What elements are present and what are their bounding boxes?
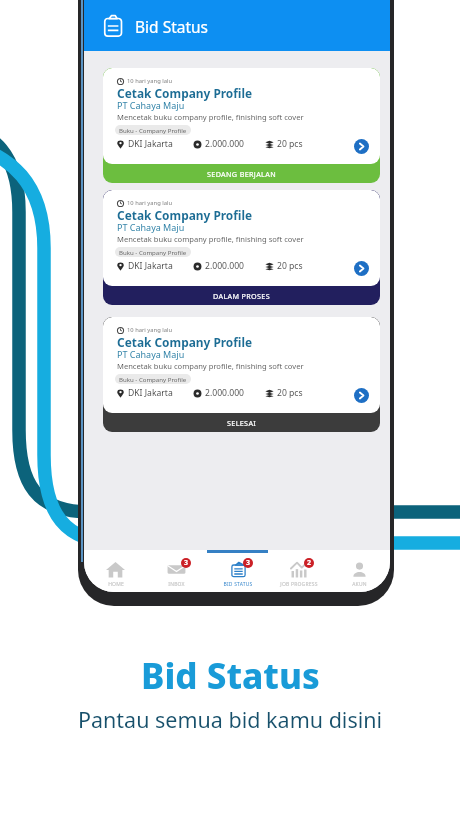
staticText: 3 [184, 558, 189, 568]
button[interactable]: SELESAI [103, 317, 380, 432]
staticText: Mencetak buku company profile, finishing… [117, 112, 304, 122]
staticText: Bid Status [135, 16, 209, 37]
staticText: JOB PROGRESS [280, 581, 318, 588]
button[interactable]: AKUN [329, 550, 390, 592]
staticText: 10 hari yang lalu [127, 199, 173, 207]
button[interactable]: 3 [207, 550, 268, 592]
staticText: 2.000.000 [205, 138, 245, 150]
button[interactable]: Open bid detail [354, 261, 369, 276]
staticText: HOME [108, 581, 124, 588]
staticText: Mencetak buku company profile, finishing… [117, 361, 304, 371]
staticText: DKI Jakarta [128, 260, 173, 272]
staticText: Mencetak buku company profile, finishing… [117, 234, 304, 244]
button[interactable]: 2 [268, 550, 329, 592]
staticText: PT Cahaya Maju [117, 221, 185, 233]
staticText: 10 hari yang lalu [127, 326, 173, 334]
staticText: DKI Jakarta [128, 138, 173, 150]
staticText: SEDANG BERJALAN [207, 169, 276, 179]
staticText: PT Cahaya Maju [117, 348, 185, 360]
staticText: Cetak Company Profile [117, 207, 253, 223]
staticText: Cetak Company Profile [117, 334, 253, 350]
staticText: 20 pcs [277, 138, 303, 150]
staticText: BID STATUS [223, 581, 253, 588]
staticText: 10 hari yang lalu [127, 77, 173, 85]
staticText: AKUN [352, 581, 367, 588]
staticText: 2.000.000 [205, 387, 245, 399]
staticText: SELESAI [227, 418, 257, 428]
button[interactable]: Open bid detail [354, 139, 369, 154]
button[interactable]: SEDANG BERJALAN [103, 68, 380, 183]
button[interactable]: HOME [84, 550, 146, 592]
staticText: Bid Status [141, 652, 320, 700]
staticText: Buku - Company Profile [119, 375, 187, 383]
staticText: Buku - Company Profile [119, 126, 187, 134]
staticText: DALAM PROSES [213, 291, 270, 301]
staticText: 20 pcs [277, 387, 303, 399]
staticText: Pantau semua bid kamu disini [78, 705, 383, 734]
button[interactable]: DALAM PROSES [103, 190, 380, 305]
staticText: INBOX [168, 581, 185, 588]
button[interactable]: Open bid detail [354, 388, 369, 403]
staticText: Buku - Company Profile [119, 248, 187, 256]
staticText: 2.000.000 [205, 260, 245, 272]
staticText: PT Cahaya Maju [117, 99, 185, 111]
button[interactable]: 3 [146, 550, 207, 592]
staticText: DKI Jakarta [128, 387, 173, 399]
staticText: 20 pcs [277, 260, 303, 272]
staticText: 2 [307, 558, 312, 568]
staticText: Cetak Company Profile [117, 85, 253, 101]
staticText: 3 [246, 558, 251, 568]
